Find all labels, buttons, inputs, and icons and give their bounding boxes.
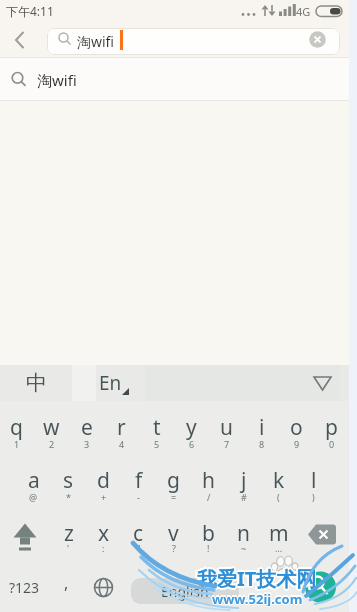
button[interactable] [299, 507, 349, 560]
button[interactable]: i [244, 401, 279, 454]
button[interactable]: m [261, 507, 296, 560]
button[interactable]: o [279, 401, 314, 454]
staticText: s [63, 466, 74, 495]
staticText: y [186, 413, 197, 442]
staticText: 我爱IT技术网 [197, 565, 317, 592]
button[interactable] [290, 559, 349, 612]
staticText: , [64, 572, 69, 594]
staticText: www.52ij.com [212, 591, 303, 607]
staticText: g [167, 466, 180, 495]
staticText: www.52ij.com [211, 590, 302, 606]
staticText: ?123 [9, 578, 40, 597]
button[interactable]: a [16, 454, 51, 507]
button[interactable] [252, 559, 287, 612]
staticText: = [171, 491, 177, 503]
staticText: 4 [119, 438, 125, 450]
staticText: p [325, 413, 338, 442]
button[interactable]: j [226, 454, 261, 507]
staticText: 我爱IT技术网 [195, 565, 315, 592]
button[interactable]: e [69, 401, 104, 454]
button[interactable]: l [296, 454, 331, 507]
button[interactable]: u [209, 401, 244, 454]
button[interactable]: z [51, 507, 86, 560]
button[interactable]: r [104, 401, 139, 454]
staticText: x [98, 519, 110, 548]
button[interactable]: f [121, 454, 156, 507]
button[interactable]: d [86, 454, 121, 507]
button[interactable] [6, 26, 36, 56]
staticText: 3 [84, 438, 90, 450]
staticText: www.52ij.com [212, 588, 303, 604]
staticText: ) [312, 491, 315, 503]
staticText: 4G [296, 4, 311, 18]
staticText: j [241, 466, 247, 495]
staticText: 6 [189, 438, 195, 450]
staticText: / [207, 491, 211, 503]
staticText: ( [277, 491, 280, 503]
button[interactable]: c [121, 507, 156, 560]
staticText: l [311, 466, 317, 495]
staticText: + [101, 491, 107, 503]
button[interactable] [85, 559, 122, 612]
staticText: 我爱IT技术网 [195, 566, 315, 593]
staticText: e [81, 413, 93, 442]
button[interactable]: En [96, 365, 145, 401]
button[interactable]: t [139, 401, 174, 454]
button[interactable]: h [191, 454, 226, 507]
staticText: c [133, 519, 144, 548]
staticText: En [99, 370, 122, 396]
staticText: 9 [294, 438, 300, 450]
staticText: r [117, 413, 126, 442]
staticText: 淘wifi [37, 70, 77, 90]
staticText: h [202, 466, 215, 495]
button[interactable] [308, 30, 327, 49]
button[interactable] [47, 28, 340, 55]
staticText: u [220, 413, 233, 442]
staticText: w [43, 413, 60, 442]
staticText: ? [172, 542, 176, 554]
button[interactable]: y [174, 401, 209, 454]
button[interactable]: n [226, 507, 261, 560]
staticText: English [161, 582, 209, 601]
staticText: 中 [26, 370, 47, 396]
staticText: 1 [14, 438, 20, 450]
button[interactable] [310, 375, 336, 393]
staticText: 我爱IT技术网 [197, 567, 317, 594]
staticText: # [241, 491, 247, 503]
staticText: a [28, 466, 40, 495]
button[interactable]: p [314, 401, 349, 454]
staticText: q [10, 413, 23, 442]
button[interactable]: 中 [0, 365, 72, 401]
button[interactable]: v [156, 507, 191, 560]
staticText: ! [207, 542, 210, 554]
staticText: " [137, 542, 141, 554]
button[interactable]: ?123 [0, 559, 49, 612]
staticText: www.52ij.com [212, 590, 303, 606]
button[interactable]: , [49, 559, 84, 612]
staticText: n [237, 519, 250, 548]
button[interactable]: s [51, 454, 86, 507]
button[interactable]: k [261, 454, 296, 507]
staticText: 淘wifi [77, 32, 115, 51]
staticText: 8 [259, 438, 265, 450]
staticText: ~ [241, 542, 247, 554]
button[interactable]: g [156, 454, 191, 507]
button[interactable]: b [191, 507, 226, 560]
staticText: 下午4:11 [6, 3, 54, 19]
staticText: 我爱IT技术网 [197, 563, 317, 590]
staticText: i [259, 413, 265, 442]
staticText: 2 [49, 438, 55, 450]
staticText: t [153, 413, 161, 442]
staticText: 我爱IT技术网 [198, 566, 318, 593]
button[interactable] [0, 507, 50, 560]
button[interactable] [0, 57, 357, 101]
staticText: f [135, 466, 143, 495]
button[interactable]: w [34, 401, 69, 454]
staticText: z [64, 519, 74, 548]
button[interactable]: x [86, 507, 121, 560]
button[interactable]: q [0, 401, 34, 454]
staticText: - [137, 491, 140, 503]
staticText: m [269, 519, 289, 548]
staticText: * [66, 491, 71, 503]
button[interactable]: English [131, 578, 239, 604]
